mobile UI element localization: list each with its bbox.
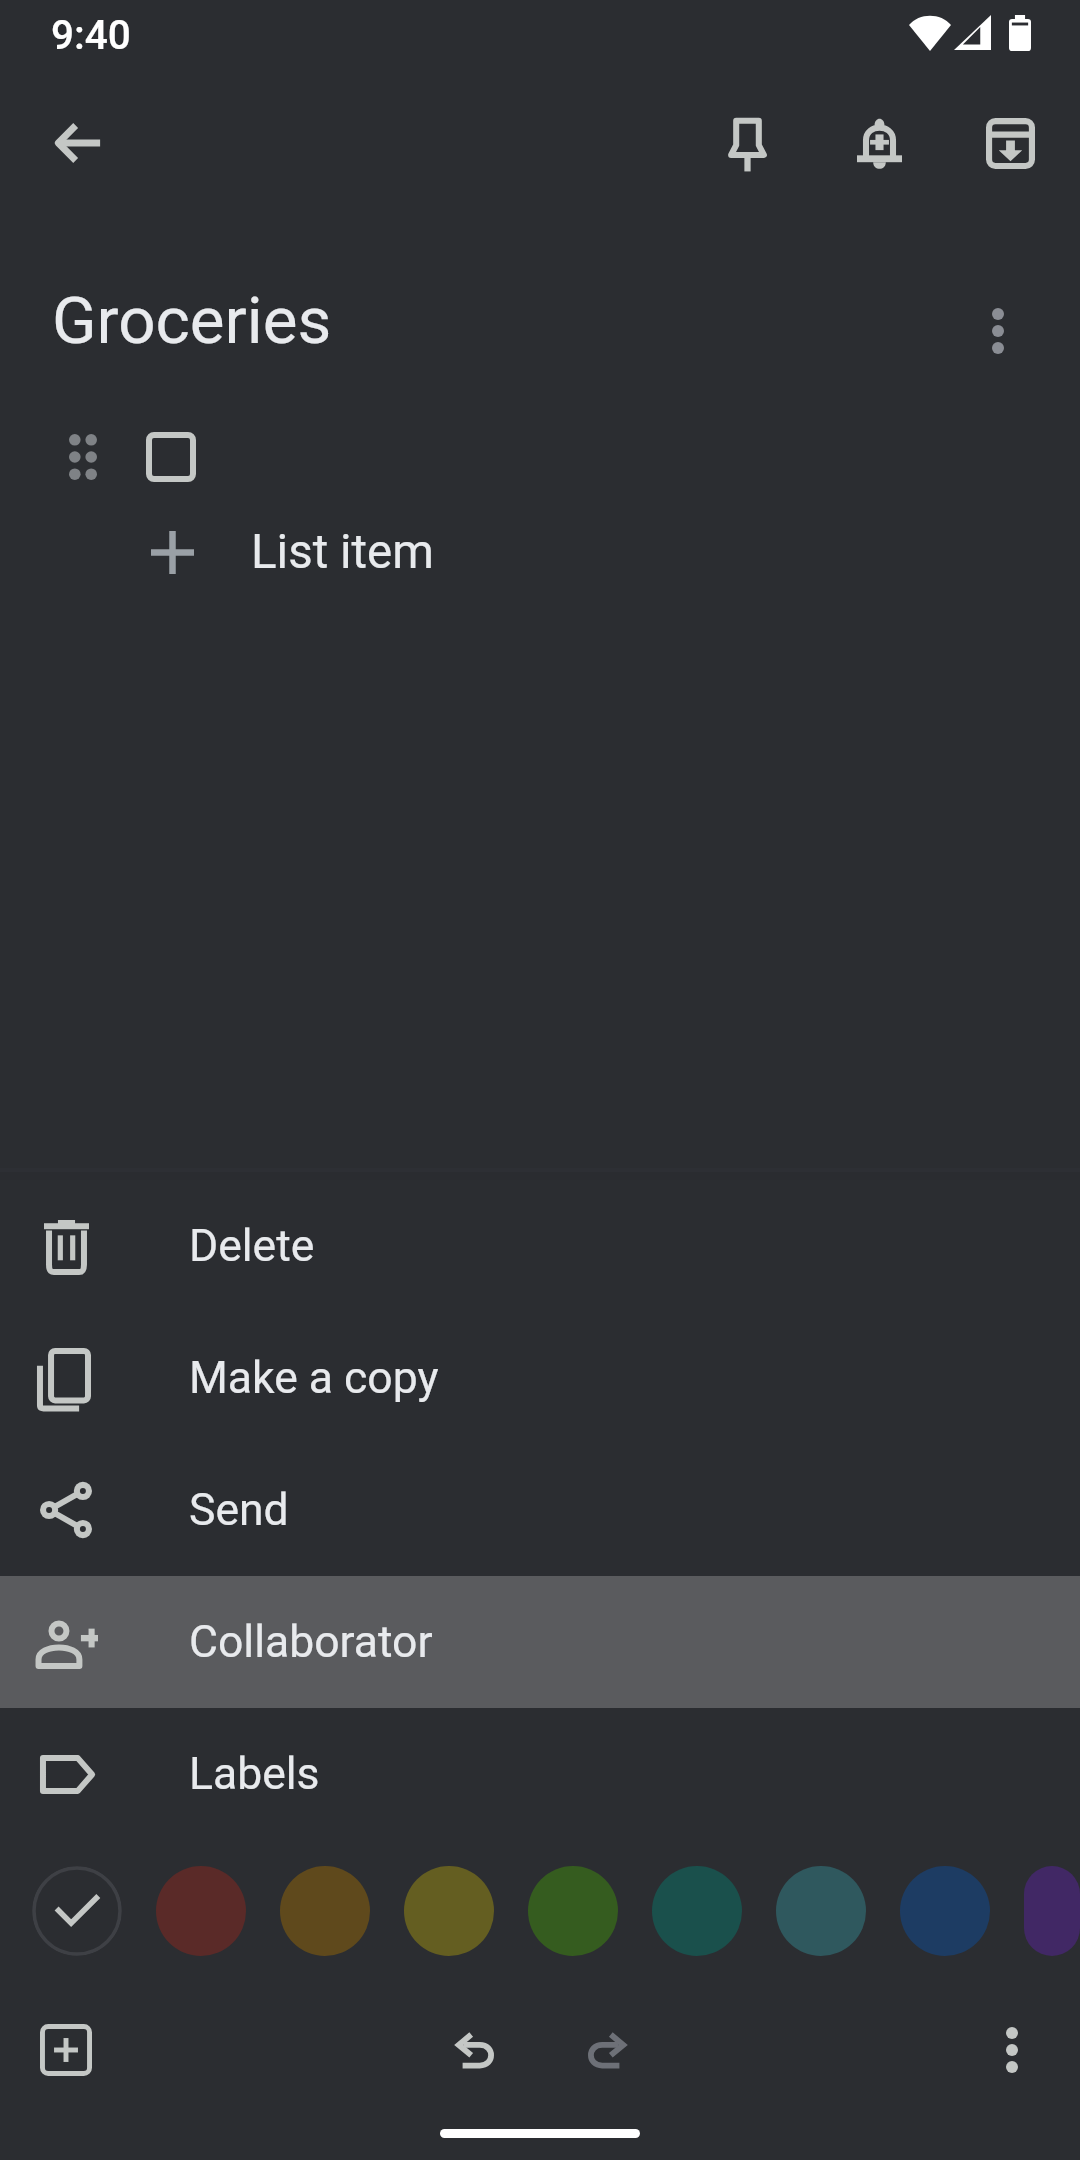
button[interactable]: Note options	[952, 292, 1044, 370]
button[interactable]: Remind me	[823, 87, 935, 199]
button[interactable]: Undo	[427, 2002, 523, 2098]
button[interactable]: No colour	[32, 1866, 122, 1956]
staticText: 9:40	[51, 11, 131, 58]
button[interactable]: Collaborator	[0, 1576, 1080, 1708]
button[interactable]: Colour	[528, 1866, 618, 1956]
button[interactable]: Make a copy	[0, 1312, 1080, 1444]
staticText: Make a copy	[189, 1352, 439, 1404]
staticText: Labels	[189, 1748, 320, 1800]
button[interactable]: Delete	[0, 1180, 1080, 1312]
button[interactable]: Archive	[954, 87, 1066, 199]
button[interactable]: Colour	[404, 1866, 494, 1956]
button[interactable]: Back	[30, 95, 126, 191]
button[interactable]: Colour	[652, 1866, 742, 1956]
staticText: Delete	[189, 1220, 315, 1272]
button[interactable]: Add list item	[18, 2002, 114, 2098]
button[interactable]: Pin	[691, 87, 803, 199]
button[interactable]: Colour	[280, 1866, 370, 1956]
staticText: Collaborator	[189, 1616, 433, 1668]
button[interactable]: Colour	[776, 1866, 866, 1956]
button[interactable]: Colour	[900, 1866, 990, 1956]
staticText: Send	[189, 1484, 289, 1536]
button[interactable]: Colour	[156, 1866, 246, 1956]
staticText: List item	[251, 524, 434, 580]
button[interactable]: List item	[0, 507, 1080, 597]
button[interactable]: Redo	[558, 2002, 654, 2098]
staticText: Groceries	[52, 282, 332, 359]
button[interactable]: More options	[964, 2002, 1060, 2098]
button[interactable]: Colour	[1024, 1866, 1080, 1956]
button[interactable]: Labels	[0, 1708, 1080, 1840]
button[interactable]: Send	[0, 1444, 1080, 1576]
button[interactable]: Check item	[146, 432, 196, 482]
